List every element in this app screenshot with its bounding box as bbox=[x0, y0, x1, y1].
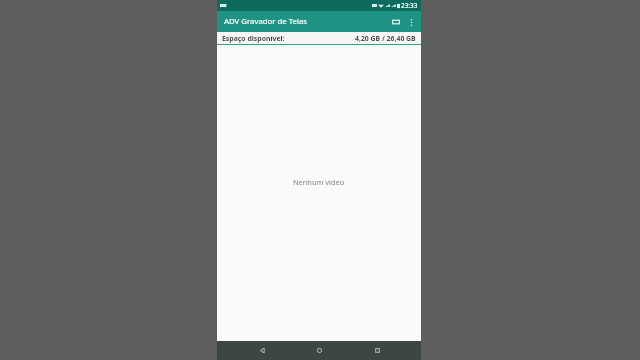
staticText: ADV Gravador de Telas bbox=[224, 16, 308, 27]
button[interactable]: Voltar bbox=[249, 341, 275, 360]
staticText: 4,20 GB / 26,40 GB bbox=[355, 34, 416, 43]
staticText: Nenhum vídeo bbox=[293, 177, 345, 187]
button[interactable]: Lista bbox=[388, 14, 404, 30]
button[interactable]: Mais opções bbox=[404, 15, 418, 29]
button[interactable]: Início bbox=[306, 341, 332, 360]
staticText: 23:33 bbox=[401, 1, 418, 10]
button[interactable]: Recentes bbox=[364, 341, 390, 360]
button[interactable]: Espaço disponível: bbox=[217, 32, 421, 44]
staticText: Espaço disponível: bbox=[222, 34, 285, 43]
